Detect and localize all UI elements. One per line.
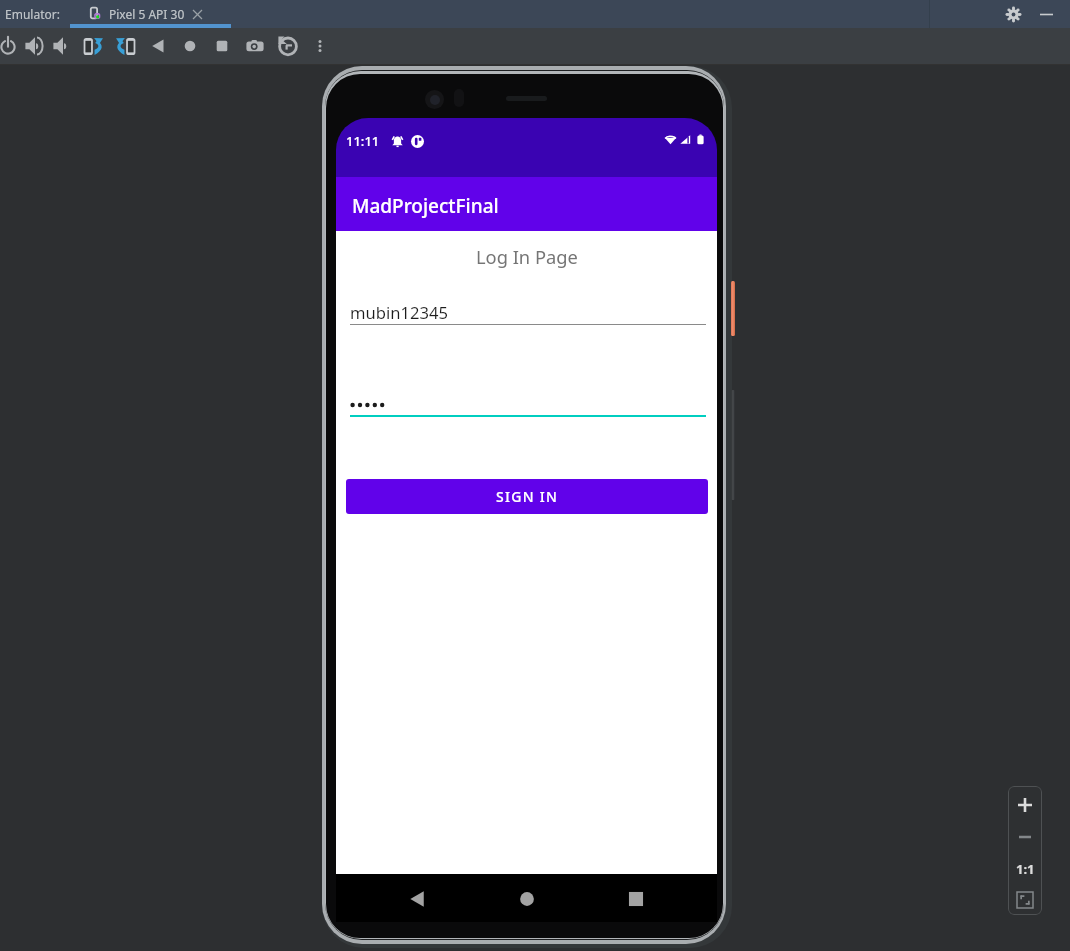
staticText: Log In Page bbox=[476, 244, 578, 269]
button[interactable]: Rotate left bbox=[78, 29, 108, 63]
button[interactable]: Back bbox=[143, 29, 173, 63]
button[interactable]: Settings bbox=[1001, 2, 1025, 26]
button[interactable]: Overview bbox=[207, 29, 237, 63]
button[interactable]: Home bbox=[503, 875, 551, 923]
button[interactable]: Zoom out bbox=[1010, 822, 1040, 852]
button[interactable] bbox=[350, 383, 706, 423]
staticText: 1:1 bbox=[1016, 860, 1035, 878]
button[interactable]: History bbox=[273, 29, 303, 63]
button[interactable]: Volume down bbox=[48, 29, 78, 63]
staticText: 11:11 bbox=[346, 132, 380, 150]
button[interactable]: Fit to screen bbox=[1010, 885, 1040, 915]
button[interactable]: Minimize bbox=[1034, 2, 1058, 26]
button[interactable]: Home bbox=[175, 29, 205, 63]
button[interactable]: Zoom in bbox=[1010, 790, 1040, 820]
button[interactable]: SIGN IN bbox=[346, 479, 708, 514]
staticText: Pixel 5 API 30 bbox=[109, 6, 185, 22]
button[interactable]: More bbox=[305, 29, 335, 63]
button[interactable]: Recent apps bbox=[612, 875, 660, 923]
button[interactable]: Pixel 5 API 30 bbox=[70, 0, 231, 28]
button[interactable]: Screenshot bbox=[240, 29, 270, 63]
staticText: mubin12345 bbox=[350, 301, 448, 324]
button[interactable]: Back bbox=[394, 875, 442, 923]
button[interactable]: Rotate right bbox=[110, 29, 140, 63]
button[interactable]: Volume button bbox=[731, 390, 735, 500]
staticText: MadProjectFinal bbox=[352, 193, 499, 219]
button[interactable]: Volume up bbox=[20, 29, 50, 63]
staticText: SIGN IN bbox=[496, 487, 559, 506]
staticText: Emulator: bbox=[5, 6, 60, 22]
button[interactable]: Power button bbox=[731, 281, 735, 336]
button[interactable]: 1:1 bbox=[1010, 854, 1040, 884]
button[interactable]: mubin12345 bbox=[350, 287, 706, 327]
button[interactable]: Power bbox=[0, 29, 23, 63]
